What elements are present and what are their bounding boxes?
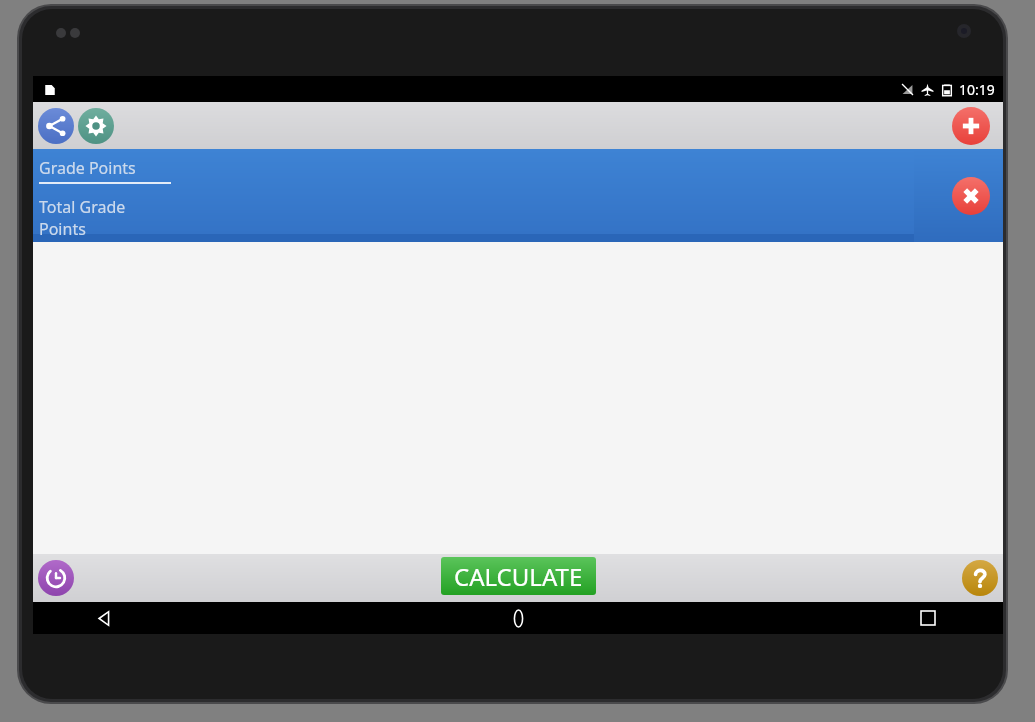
button[interactable]: Add (952, 107, 990, 145)
button[interactable]: Recent apps (913, 603, 943, 633)
staticText: CALCULATE (454, 560, 583, 593)
button[interactable]: Remove (952, 177, 990, 215)
button[interactable]: Total Grade Points (39, 196, 171, 242)
button[interactable]: Help (962, 560, 998, 596)
staticText: 10:19 (959, 80, 995, 99)
button[interactable]: Share (38, 108, 74, 144)
button[interactable]: History (38, 560, 74, 596)
button[interactable]: Back (89, 603, 119, 633)
staticText: Grade Points (39, 157, 136, 179)
staticText: Total Grade Points (39, 196, 171, 240)
button[interactable]: CALCULATE (441, 557, 596, 595)
button[interactable]: Settings (78, 108, 114, 144)
button[interactable]: Home (503, 603, 533, 633)
button[interactable]: Grade Points (39, 157, 171, 184)
